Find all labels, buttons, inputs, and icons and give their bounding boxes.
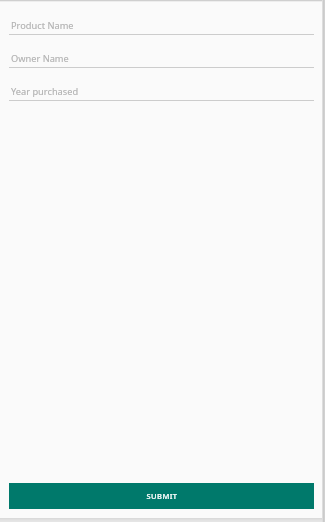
staticText: Product Name (11, 19, 74, 32)
button[interactable]: Product Name (0, 17, 325, 35)
staticText: Owner Name (11, 52, 69, 65)
button[interactable]: Owner Name (0, 50, 325, 68)
staticText: Year purchased (11, 85, 79, 98)
button[interactable]: Year purchased (0, 83, 325, 101)
staticText: SUBMIT (146, 491, 178, 501)
button[interactable]: Submit (9, 483, 314, 509)
